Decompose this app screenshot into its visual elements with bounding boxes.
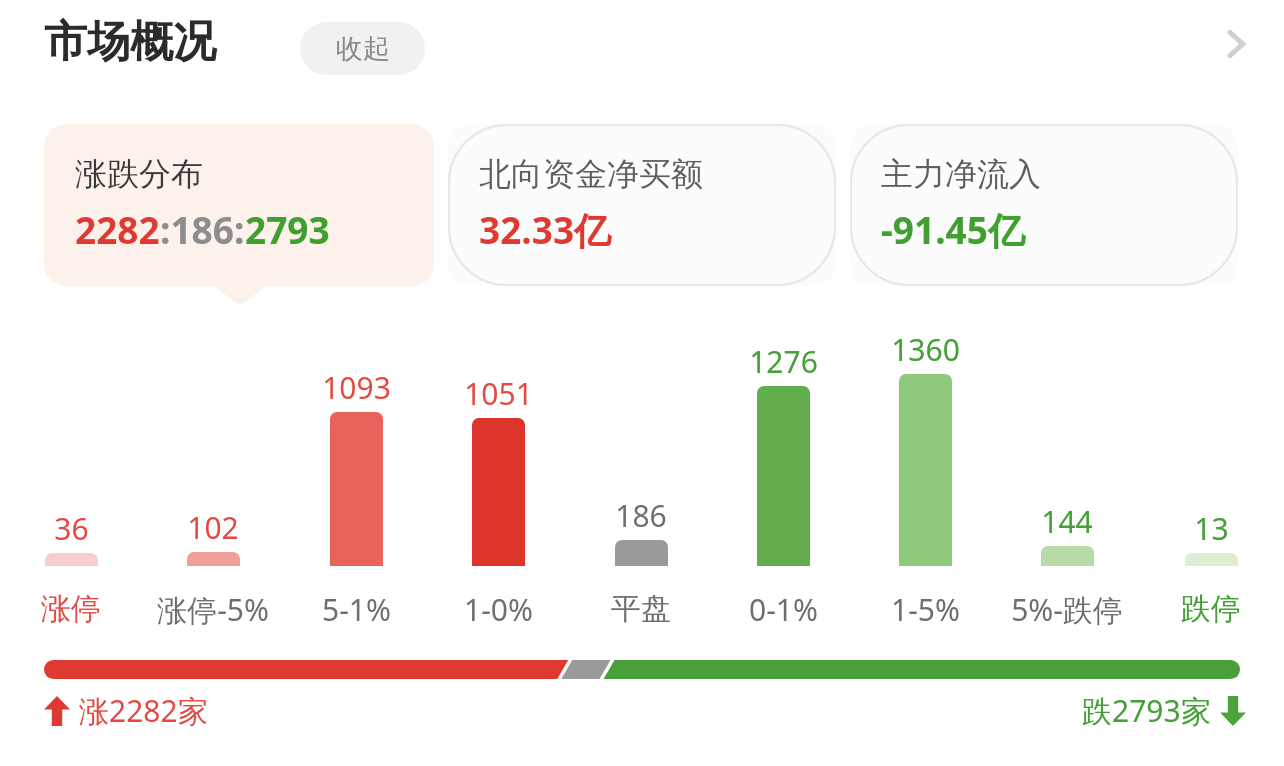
staticText: 36 — [54, 508, 89, 549]
staticText: 跌2793家 — [1082, 690, 1211, 731]
staticText: 5-1% — [322, 589, 391, 630]
staticText: 涨停 — [41, 590, 101, 628]
staticText: 5%-跌停 — [1011, 589, 1123, 630]
staticText: 跌停 — [1181, 590, 1241, 628]
staticText: 186 — [615, 495, 667, 536]
button[interactable]: 北向资金净买额 — [448, 124, 836, 286]
staticText: 13 — [1194, 508, 1229, 549]
staticText: 102 — [187, 507, 239, 548]
staticText: 涨跌分布 — [75, 154, 203, 194]
staticText: 收起 — [336, 32, 390, 66]
staticText: -91.45亿 — [881, 204, 1025, 255]
staticText: 1276 — [749, 341, 818, 382]
staticText: 2793 — [245, 204, 330, 254]
button[interactable]: 收起 — [300, 22, 425, 75]
staticText: 2282 — [75, 204, 160, 254]
staticText: 1051 — [464, 373, 533, 414]
staticText: 1-5% — [891, 589, 960, 630]
staticText: 涨停-5% — [157, 589, 269, 630]
button[interactable]: 主力净流入 — [850, 124, 1238, 286]
staticText: 1-0% — [464, 589, 533, 630]
staticText: 1093 — [322, 367, 391, 408]
staticText: 北向资金净买额 — [479, 154, 703, 194]
staticText: 0-1% — [749, 589, 818, 630]
staticText: 涨2282家 — [79, 690, 208, 731]
staticText: 平盘 — [611, 590, 671, 628]
button[interactable]: 涨跌分布 — [44, 124, 434, 286]
button[interactable]: More — [1210, 18, 1262, 70]
staticText: 主力净流入 — [881, 154, 1041, 194]
staticText: 市场概况 — [44, 15, 216, 69]
staticText: 144 — [1041, 501, 1093, 542]
staticText: 1360 — [891, 329, 960, 370]
staticText: 32.33亿 — [479, 204, 612, 255]
staticText: :186: — [160, 204, 245, 254]
